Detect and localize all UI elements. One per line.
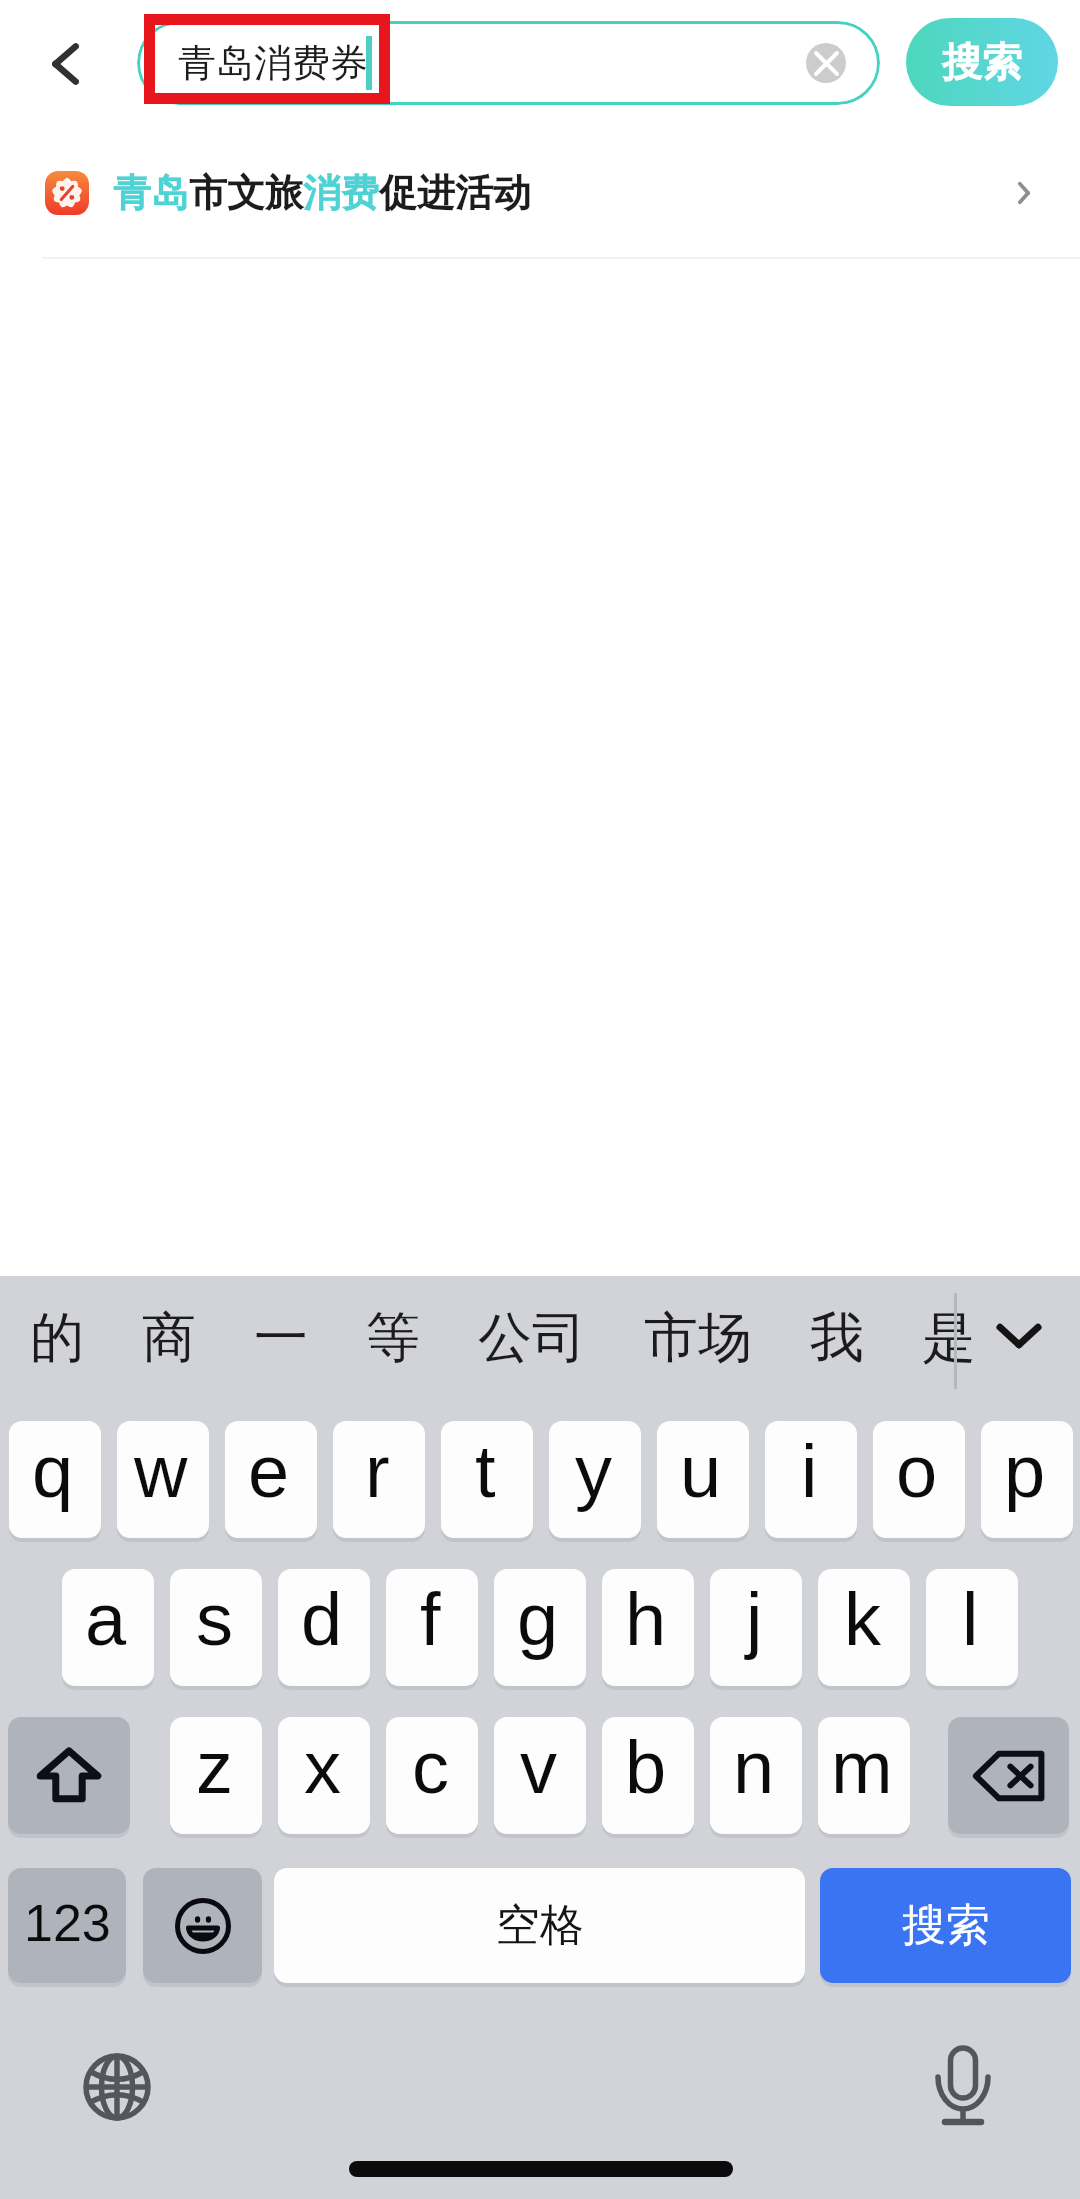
- staticText: 市场: [644, 1304, 752, 1372]
- staticText: 青岛市文旅消费促进活动: [113, 169, 531, 217]
- button[interactable]: v: [494, 1717, 586, 1834]
- button[interactable]: Emoji: [143, 1868, 262, 1983]
- staticText: 商: [142, 1304, 196, 1372]
- staticText: 123: [24, 1894, 111, 1952]
- button[interactable]: x: [278, 1717, 370, 1834]
- button[interactable]: k: [818, 1569, 910, 1686]
- button[interactable]: w: [117, 1421, 209, 1538]
- button[interactable]: 空格: [274, 1868, 805, 1983]
- staticText: h: [625, 1578, 667, 1661]
- button[interactable]: Shift: [8, 1717, 130, 1834]
- button[interactable]: b: [602, 1717, 694, 1834]
- staticText: a: [85, 1578, 127, 1661]
- staticText: e: [248, 1430, 290, 1513]
- button[interactable]: m: [818, 1717, 910, 1834]
- button[interactable]: c: [386, 1717, 478, 1834]
- button[interactable]: 搜索: [820, 1868, 1071, 1983]
- staticText: n: [733, 1726, 775, 1809]
- button[interactable]: 我: [781, 1276, 893, 1400]
- staticText: g: [517, 1578, 559, 1661]
- button[interactable]: 青岛消费券: [137, 21, 880, 105]
- staticText: 是: [922, 1304, 976, 1372]
- button[interactable]: Backspace: [948, 1717, 1069, 1834]
- staticText: o: [896, 1430, 938, 1513]
- button[interactable]: p: [981, 1421, 1073, 1538]
- staticText: 搜索: [942, 37, 1022, 87]
- staticText: m: [831, 1726, 893, 1809]
- staticText: j: [746, 1578, 763, 1661]
- button[interactable]: q: [9, 1421, 101, 1538]
- button[interactable]: g: [494, 1569, 586, 1686]
- button[interactable]: Voice input: [923, 2039, 1003, 2119]
- button[interactable]: Back: [24, 22, 108, 106]
- button[interactable]: u: [657, 1421, 749, 1538]
- staticText: c: [412, 1726, 449, 1809]
- button[interactable]: e: [225, 1421, 317, 1538]
- button[interactable]: r: [333, 1421, 425, 1538]
- button[interactable]: Clear text: [806, 43, 846, 83]
- button[interactable]: d: [278, 1569, 370, 1686]
- button[interactable]: 搜索: [906, 18, 1058, 106]
- button[interactable]: 的: [1, 1276, 113, 1400]
- button[interactable]: j: [710, 1569, 802, 1686]
- staticText: v: [520, 1726, 557, 1809]
- button[interactable]: 等: [337, 1276, 449, 1400]
- button[interactable]: a: [62, 1569, 154, 1686]
- button[interactable]: z: [170, 1717, 262, 1834]
- staticText: q: [32, 1430, 74, 1513]
- button[interactable]: n: [710, 1717, 802, 1834]
- staticText: 的: [30, 1304, 84, 1372]
- staticText: u: [680, 1430, 722, 1513]
- staticText: x: [304, 1726, 341, 1809]
- button[interactable]: 一: [225, 1276, 337, 1400]
- staticText: 一: [254, 1304, 308, 1372]
- button[interactable]: s: [170, 1569, 262, 1686]
- staticText: 搜索: [902, 1898, 990, 1953]
- button[interactable]: Change language: [83, 2053, 151, 2121]
- staticText: t: [475, 1430, 496, 1513]
- button[interactable]: 123: [8, 1868, 126, 1983]
- button[interactable]: Hide keyboard: [976, 1293, 1062, 1379]
- staticText: 我: [810, 1304, 864, 1372]
- staticText: d: [301, 1578, 343, 1661]
- staticText: f: [420, 1578, 441, 1661]
- button[interactable]: o: [873, 1421, 965, 1538]
- staticText: p: [1004, 1430, 1046, 1513]
- staticText: l: [962, 1578, 979, 1661]
- staticText: s: [196, 1578, 233, 1661]
- staticText: 空格: [496, 1898, 584, 1953]
- button[interactable]: f: [386, 1569, 478, 1686]
- staticText: 等: [366, 1304, 420, 1372]
- button[interactable]: t: [441, 1421, 533, 1538]
- button[interactable]: 商: [113, 1276, 225, 1400]
- button[interactable]: 公司: [449, 1276, 615, 1400]
- staticText: 青岛消费券: [178, 39, 368, 87]
- staticText: y: [575, 1430, 612, 1513]
- staticText: z: [196, 1726, 233, 1809]
- button[interactable]: l: [926, 1569, 1018, 1686]
- staticText: r: [365, 1430, 390, 1513]
- staticText: k: [844, 1578, 881, 1661]
- button[interactable]: h: [602, 1569, 694, 1686]
- button[interactable]: 青岛市文旅消费促进活动: [0, 126, 1080, 259]
- staticText: i: [801, 1430, 818, 1513]
- staticText: b: [625, 1726, 667, 1809]
- button[interactable]: 市场: [615, 1276, 781, 1400]
- staticText: w: [134, 1430, 188, 1513]
- staticText: 公司: [478, 1304, 586, 1372]
- button[interactable]: 是: [893, 1276, 1005, 1400]
- button[interactable]: i: [765, 1421, 857, 1538]
- button[interactable]: y: [549, 1421, 641, 1538]
